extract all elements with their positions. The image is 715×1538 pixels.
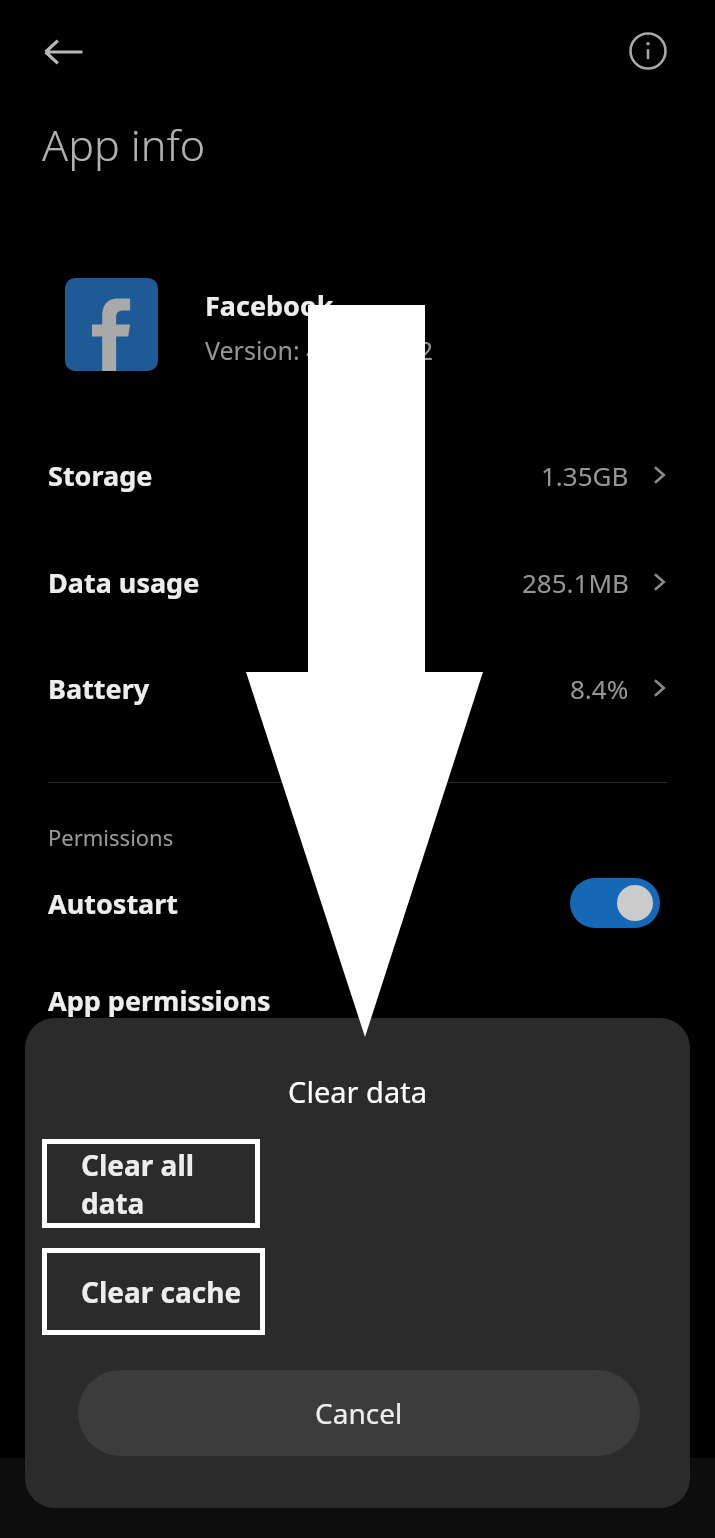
staticText: Clear cache xyxy=(81,1273,242,1311)
staticText: Version: 4.0.0.0.102 xyxy=(205,333,434,367)
staticText: Autostart xyxy=(48,885,179,922)
button[interactable]: Autostart toggle xyxy=(570,878,660,928)
button[interactable]: Cancel xyxy=(78,1370,640,1456)
button[interactable]: Info xyxy=(618,21,678,81)
staticText: Clear all data xyxy=(81,1146,260,1222)
staticText: Permissions xyxy=(48,822,174,852)
staticText: 8.4% xyxy=(570,671,629,706)
button[interactable]: Battery xyxy=(0,660,715,716)
button[interactable]: Clear all data xyxy=(42,1139,260,1228)
staticText: Facebook xyxy=(205,287,334,324)
button[interactable]: Clear cache xyxy=(42,1248,265,1335)
staticText: 285.1MB xyxy=(522,565,629,600)
button[interactable]: Storage xyxy=(0,447,715,503)
staticText: Data usage xyxy=(48,564,200,601)
button[interactable]: App permissions xyxy=(48,982,271,1019)
staticText: Battery xyxy=(48,670,150,707)
staticText: App info xyxy=(42,115,206,174)
button[interactable]: Data usage xyxy=(0,554,715,610)
staticText: Cancel xyxy=(315,1394,403,1432)
button[interactable]: Back xyxy=(34,22,94,82)
staticText: 1.35GB xyxy=(541,458,629,493)
staticText: Storage xyxy=(48,457,153,494)
button[interactable]: Autostart xyxy=(0,862,715,944)
staticText: Clear data xyxy=(25,1072,690,1111)
